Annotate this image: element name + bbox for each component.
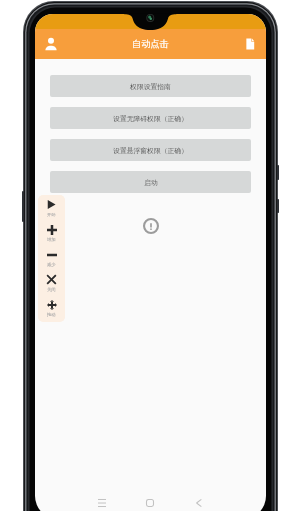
button[interactable]: 增加 (38, 220, 65, 245)
staticText: 关闭 (47, 287, 56, 292)
staticText: 自动点击 (132, 38, 169, 50)
button[interactable]: Home (141, 494, 159, 511)
staticText: 设置悬浮窗权限（正确） (113, 146, 188, 155)
staticText: 开始 (47, 212, 56, 217)
button[interactable]: Recents (93, 494, 111, 511)
button[interactable]: 启动 (50, 171, 251, 193)
button[interactable]: Back (189, 494, 207, 511)
staticText: 设置无障碍权限（正确） (113, 114, 188, 123)
button[interactable]: 设置无障碍权限（正确） (50, 107, 251, 129)
button[interactable]: Document (239, 33, 261, 55)
button[interactable]: 减少 (38, 245, 65, 270)
button[interactable]: Info (141, 216, 161, 236)
staticText: 增加 (47, 237, 56, 242)
button[interactable]: 关闭 (38, 270, 65, 295)
staticText: 权限设置指南 (130, 82, 171, 91)
button[interactable]: 权限设置指南 (50, 75, 251, 97)
staticText: 启动 (144, 178, 158, 187)
button[interactable]: Account (40, 33, 62, 55)
button[interactable]: 开始 (38, 195, 65, 220)
staticText: 拖动 (47, 312, 56, 317)
button[interactable]: 设置悬浮窗权限（正确） (50, 139, 251, 161)
button[interactable]: 拖动 (38, 295, 65, 320)
staticText: 减少 (47, 262, 56, 267)
